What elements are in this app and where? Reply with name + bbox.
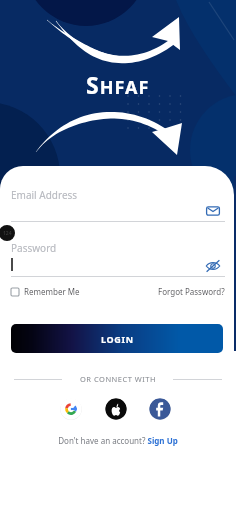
button[interactable]: Remember Me — [11, 286, 80, 297]
button[interactable]: Toggle password visibility — [205, 258, 221, 274]
staticText: LOGIN — [101, 333, 134, 345]
button[interactable]: Sign in with Apple — [105, 398, 127, 420]
button[interactable]: LOGIN — [11, 324, 223, 353]
staticText: Remember Me — [24, 286, 80, 297]
button[interactable]: Notifications — [0, 225, 15, 241]
button[interactable]: Forgot Password? — [158, 286, 225, 297]
staticText: Don't have an account? Sign Up — [58, 435, 178, 446]
staticText: Email Address — [11, 188, 78, 202]
button[interactable]: Sign in with Google — [60, 398, 82, 420]
staticText: 124 — [3, 230, 12, 237]
staticText: OR CONNECT WITH — [80, 374, 157, 384]
staticText: Password — [11, 241, 57, 255]
button[interactable]: Email — [205, 203, 221, 219]
button[interactable]: Don't have an account? Sign Up — [58, 435, 178, 446]
staticText: Forgot Password? — [158, 286, 225, 297]
button[interactable]: Sign in with Facebook — [149, 398, 171, 420]
staticText: SHFAF — [86, 69, 150, 100]
